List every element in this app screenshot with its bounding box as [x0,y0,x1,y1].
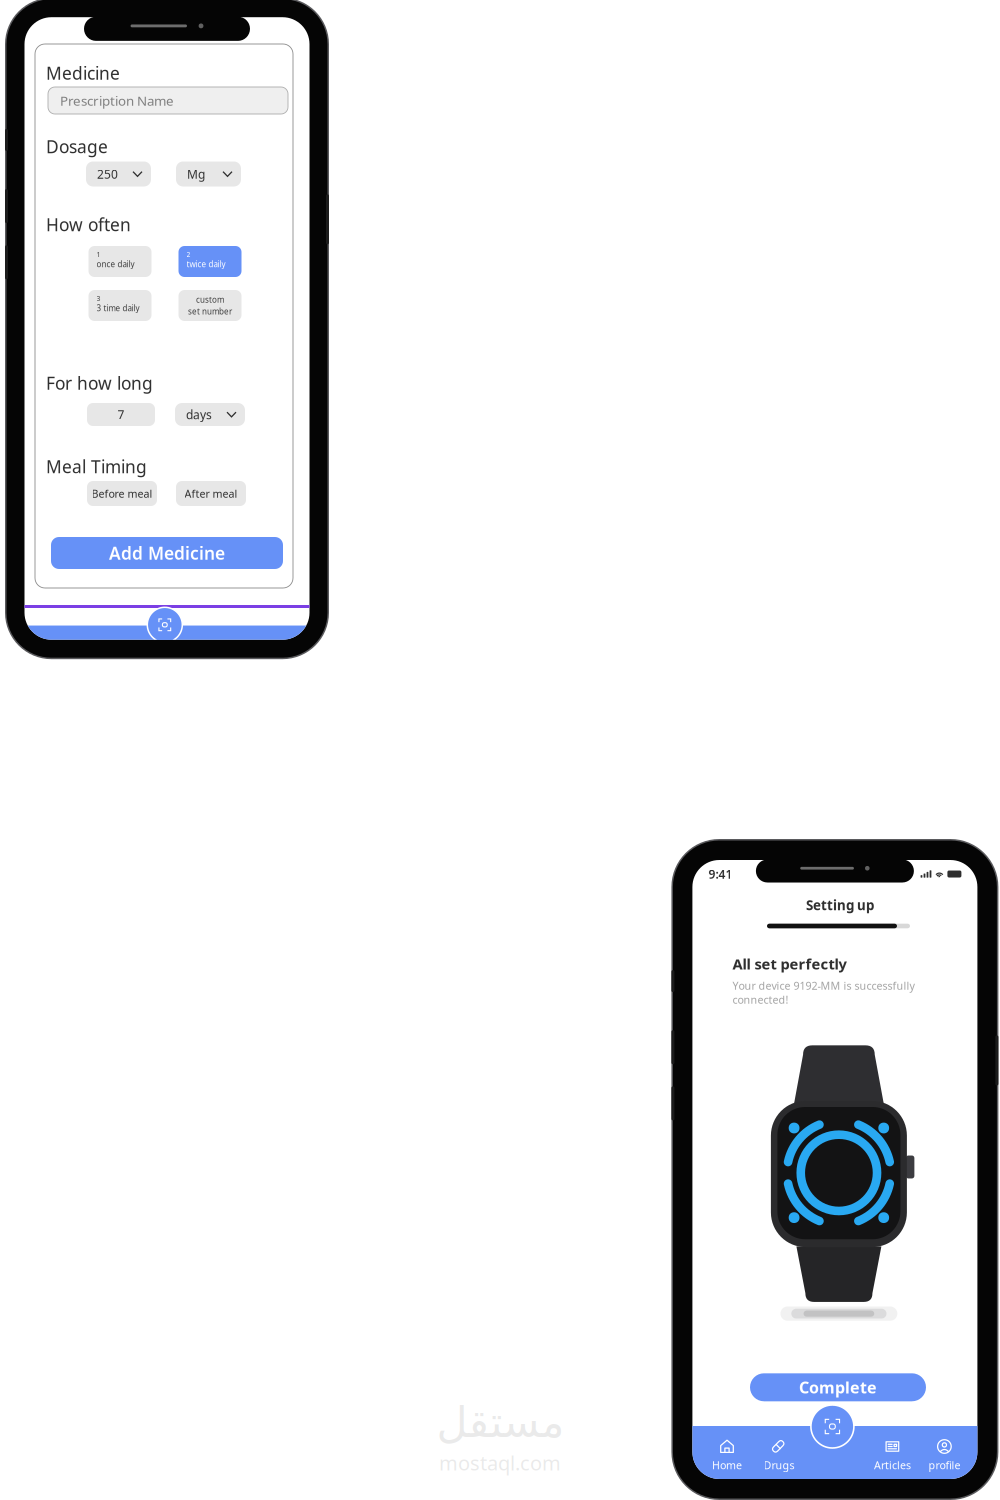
staticText: Mg [187,166,205,182]
button[interactable]: custom [178,290,241,321]
button[interactable]: Scan [147,607,182,642]
button[interactable]: 3 [88,290,151,321]
staticText: profile [928,1458,960,1472]
button[interactable]: days [175,403,245,426]
staticText: days [186,406,212,422]
staticText: Before meal [91,486,152,501]
button[interactable]: 250 [86,161,151,186]
staticText: 7 [117,406,124,422]
staticText: connected! [732,993,788,1007]
staticText: 3 time daily [96,303,139,313]
staticText: Complete [799,1377,877,1398]
button[interactable]: Scan [811,1405,854,1448]
staticText: How often [46,213,131,236]
staticText: once daily [96,259,134,269]
button[interactable]: Articles [869,1438,915,1472]
staticText: Meal Timing [46,455,147,478]
staticText: 250 [97,166,118,182]
staticText: Dosage [46,135,108,158]
staticText: Medicine [46,61,120,84]
button[interactable]: 2 [178,246,241,277]
button[interactable]: 7 [87,403,155,426]
staticText: Your device 9192-MM is successfully [732,978,914,993]
button[interactable]: After meal [176,481,246,506]
staticText: Setting up [806,896,874,914]
staticText: Drugs [763,1458,794,1472]
staticText: twice daily [186,259,225,269]
button[interactable]: Drugs [756,1438,802,1472]
button[interactable]: Complete [750,1373,926,1401]
staticText: 1 [96,250,100,259]
button[interactable]: Before meal [87,481,157,506]
button[interactable]: Add Medicine [51,537,283,569]
staticText: After meal [184,486,237,501]
staticText: All set perfectly [732,954,846,973]
staticText: Home [712,1458,742,1472]
staticText: For how long [46,371,153,394]
staticText: set number [188,306,232,317]
staticText: Add Medicine [109,541,225,564]
staticText: 3 [96,294,100,303]
staticText: custom [196,294,224,305]
staticText: 2 [186,250,190,259]
staticText: Articles [874,1458,911,1472]
button[interactable]: Mg [176,161,241,186]
button[interactable]: Home [704,1438,750,1472]
staticText: مستقل [436,1398,564,1446]
button[interactable]: profile [921,1438,967,1472]
button[interactable]: 1 [88,246,151,277]
staticText: 9:41 [708,866,732,882]
staticText: Prescription Name [60,92,174,109]
staticText: mostaql.com [439,1449,561,1476]
